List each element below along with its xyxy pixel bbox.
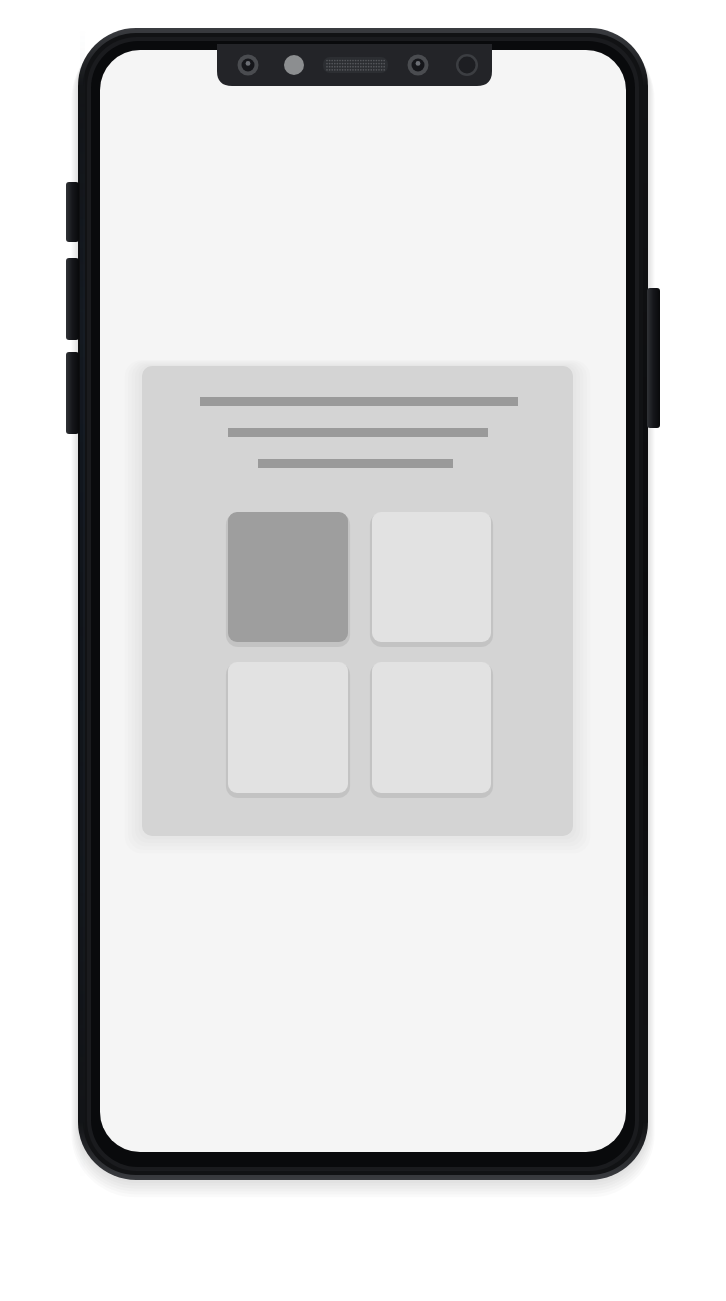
button[interactable]: Selected tile <box>228 512 348 642</box>
button[interactable]: Selected tile <box>142 366 573 836</box>
